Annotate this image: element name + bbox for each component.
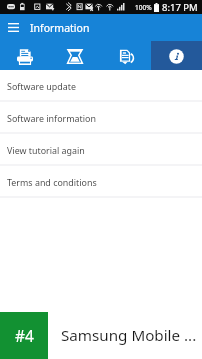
staticText: Samsung Mobile ... — [61, 325, 197, 346]
staticText: Terms and conditions — [7, 176, 97, 188]
staticText: Software information — [7, 112, 96, 124]
button[interactable]: Terms and conditions — [0, 166, 202, 198]
button[interactable]: View tutorial again — [0, 134, 202, 166]
staticText: Information — [30, 21, 90, 35]
staticText: 100% — [135, 3, 152, 12]
staticText: Software update — [7, 80, 76, 92]
staticText: #4 — [15, 325, 34, 346]
staticText: 8:17 PM — [162, 1, 198, 14]
button[interactable]: #4 — [0, 312, 48, 359]
staticText: View tutorial again — [7, 144, 85, 156]
button[interactable]: Scan — [50, 41, 100, 70]
button[interactable]: Fax — [100, 41, 151, 70]
button[interactable]: Information — [151, 41, 202, 70]
button[interactable]: Software information — [0, 102, 202, 134]
button[interactable]: Print — [0, 41, 50, 70]
button[interactable]: Software update — [0, 70, 202, 102]
button[interactable]: Open navigation drawer — [0, 14, 27, 41]
